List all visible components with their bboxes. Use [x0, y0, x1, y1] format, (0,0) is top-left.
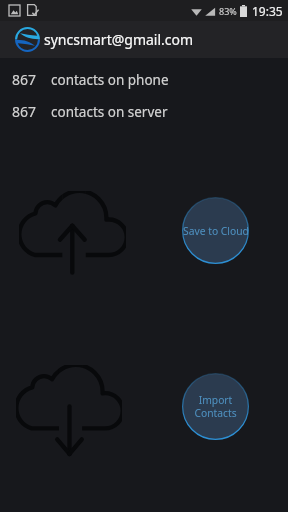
- staticText: 867: [12, 70, 37, 89]
- staticText: contacts on phone: [51, 71, 169, 89]
- button[interactable]: Import Contacts: [182, 373, 249, 440]
- button[interactable]: Save to Cloud: [182, 197, 249, 264]
- staticText: Import Contacts: [194, 393, 237, 420]
- staticText: 19:35: [252, 3, 283, 19]
- staticText: 867: [12, 102, 37, 121]
- staticText: 83%: [219, 5, 237, 17]
- staticText: contacts on server: [51, 103, 168, 121]
- button[interactable]: syncsmart@gmail.com: [0, 21, 288, 58]
- staticText: syncsmart@gmail.com: [44, 30, 194, 49]
- staticText: Save to Cloud: [183, 224, 249, 238]
